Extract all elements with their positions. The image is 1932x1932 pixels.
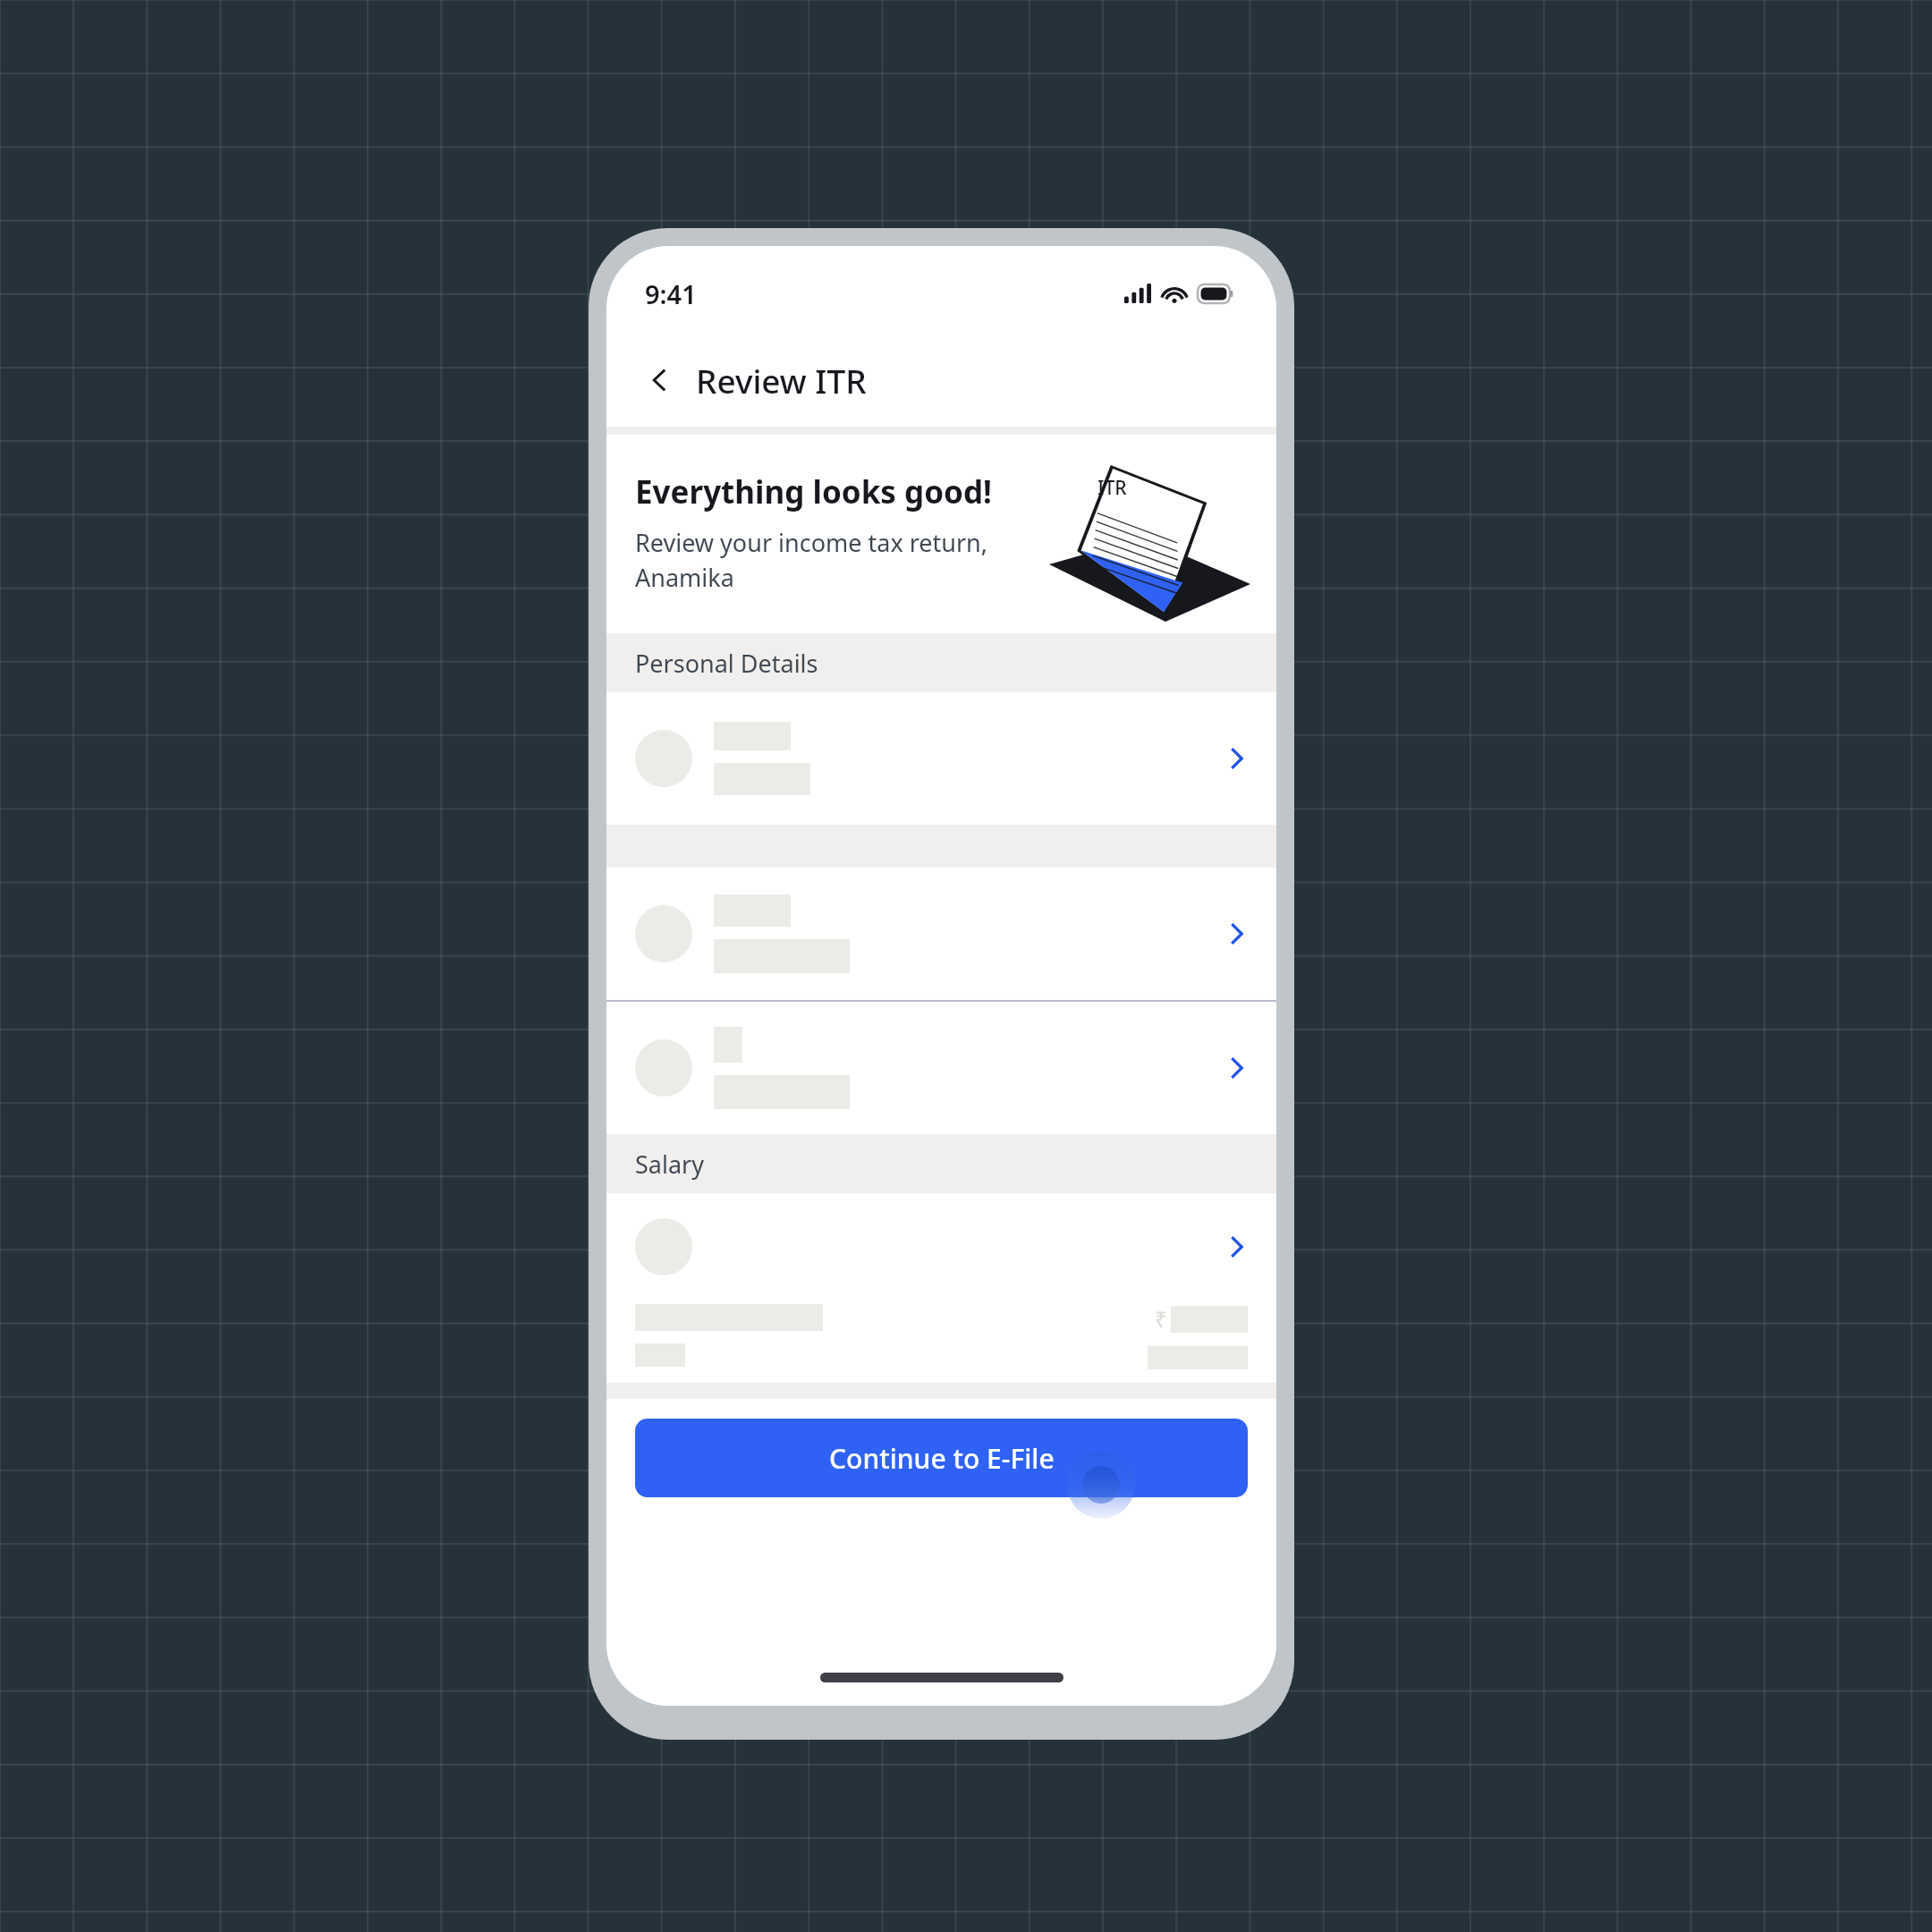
button[interactable]: ₹ — [606, 1193, 1276, 1383]
button[interactable]: Back — [635, 355, 685, 405]
staticText: Salary — [635, 1148, 705, 1181]
staticText: Personal Details — [635, 647, 818, 680]
button[interactable]: Continue to E-File — [635, 1419, 1248, 1497]
staticText: 9:41 — [645, 276, 697, 311]
staticText: Review ITR — [696, 358, 867, 402]
staticText: Everything looks good! — [635, 470, 992, 513]
staticText: Review your income tax return, Anamika — [635, 526, 988, 594]
button[interactable] — [606, 868, 1276, 1000]
button[interactable] — [606, 692, 1276, 825]
staticText: ITR — [1097, 475, 1127, 501]
staticText: Continue to E-File — [829, 1440, 1055, 1477]
staticText: ₹ — [1155, 1304, 1167, 1334]
button[interactable] — [606, 1002, 1276, 1134]
